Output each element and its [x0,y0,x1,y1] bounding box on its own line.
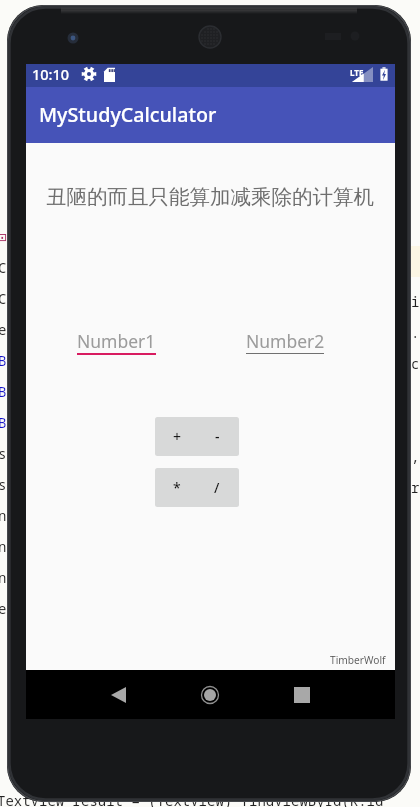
staticText: Button bt2 = [0,382,99,401]
staticText: esult = (Tex [0,599,99,618]
staticText: Number2 [246,329,324,353]
staticText: Button bt1 = [0,351,99,370]
staticText: number2 = fi [0,537,99,556]
button[interactable]: Home [180,670,240,719]
button[interactable]: Recents [272,670,332,719]
staticText: Number1 [77,329,156,353]
button[interactable]: * [155,468,239,507]
button[interactable]: Number1 [77,329,156,355]
staticText: ⊡ onCreate(Bu [0,227,108,246]
staticText: LTE [350,67,364,78]
staticText: number3 = fi [0,568,99,587]
staticText: edText numbe [0,320,99,339]
button[interactable]: Back [88,670,148,719]
staticText: 丑陋的而且只能算加减乘除的计算机 [46,184,374,210]
staticText: . [411,323,420,342]
staticText: setOnClickLi [0,444,99,463]
staticText: MyStudyCalculator [39,101,217,128]
staticText: i [411,292,420,311]
staticText: TextView result = (TextView) findViewByI… [0,791,384,807]
staticText: / [214,478,220,497]
staticText: * [173,478,181,497]
staticText: number1 = fi [0,506,99,525]
staticText: r [411,478,420,497]
staticText: c [411,354,420,373]
staticText: , [411,447,420,466]
button[interactable]: + [155,417,239,456]
staticText: 10:10 [32,64,70,84]
button[interactable]: Number2 [246,329,324,354]
staticText: Context cont [0,258,99,277]
staticText: + [173,427,182,446]
staticText: Context ctx2 [0,289,99,308]
staticText: Button bt3 = [0,413,99,432]
staticText: setOnClickLi [0,475,99,494]
staticText: - [215,427,220,446]
staticText: TimberWolf [330,653,386,667]
